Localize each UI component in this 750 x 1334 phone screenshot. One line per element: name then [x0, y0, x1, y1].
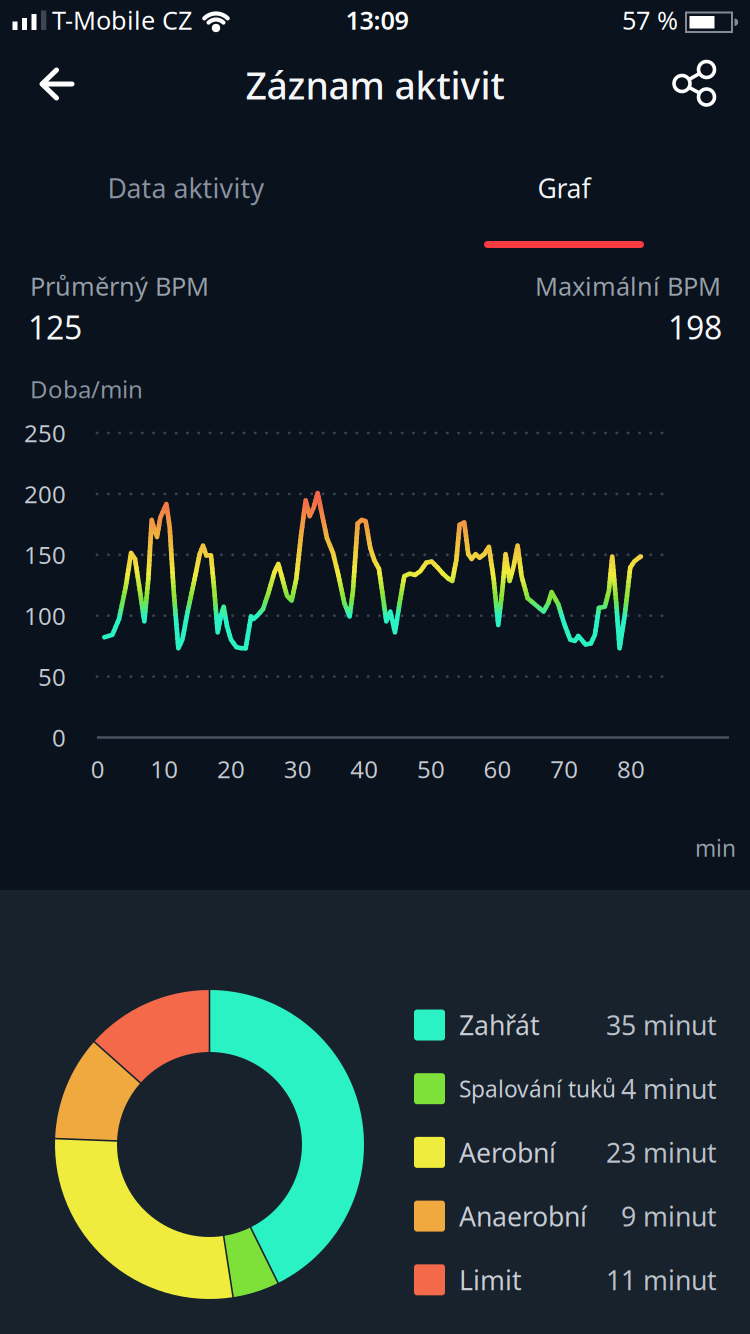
- staticText: 50: [417, 753, 445, 785]
- staticText: Maximální BPM: [535, 269, 721, 303]
- staticText: Aerobní: [459, 1135, 556, 1170]
- staticText: 4 minut: [621, 1071, 717, 1106]
- staticText: 50: [38, 661, 66, 693]
- staticText: 200: [24, 478, 66, 510]
- staticText: Doba/min: [30, 373, 143, 405]
- button[interactable]: Data aktivity: [26, 138, 346, 238]
- staticText: 60: [484, 753, 512, 785]
- staticText: 13:09: [345, 3, 408, 37]
- staticText: T-Mobile CZ: [52, 3, 192, 37]
- staticText: 0: [91, 753, 105, 785]
- staticText: 10: [150, 753, 178, 785]
- staticText: 11 minut: [606, 1262, 717, 1297]
- staticText: min: [695, 833, 736, 863]
- staticText: 35 minut: [606, 1007, 717, 1043]
- button[interactable]: Back: [27, 60, 87, 108]
- staticText: Anaerobní: [459, 1198, 587, 1234]
- staticText: 198: [668, 306, 722, 348]
- staticText: Zahřát: [459, 1007, 540, 1043]
- staticText: Záznam aktivit: [245, 60, 504, 110]
- staticText: 30: [284, 753, 312, 785]
- staticText: 150: [24, 539, 66, 571]
- staticText: 0: [52, 722, 66, 753]
- staticText: 250: [24, 417, 66, 449]
- staticText: 20: [217, 753, 245, 785]
- staticText: 9 minut: [621, 1198, 717, 1234]
- staticText: 125: [28, 306, 82, 348]
- button[interactable]: Share: [662, 51, 726, 115]
- staticText: Data aktivity: [107, 170, 264, 206]
- staticText: 100: [24, 600, 66, 632]
- staticText: Průměrný BPM: [30, 269, 209, 303]
- staticText: 40: [350, 753, 378, 785]
- staticText: 23 minut: [606, 1135, 717, 1170]
- staticText: Graf: [537, 170, 590, 206]
- staticText: 80: [617, 753, 645, 785]
- button[interactable]: Graf: [404, 150, 724, 250]
- staticText: 70: [550, 753, 578, 785]
- staticText: Limit: [459, 1262, 522, 1297]
- staticText: 57 %: [622, 3, 678, 37]
- staticText: Spalování tuků: [459, 1074, 616, 1104]
